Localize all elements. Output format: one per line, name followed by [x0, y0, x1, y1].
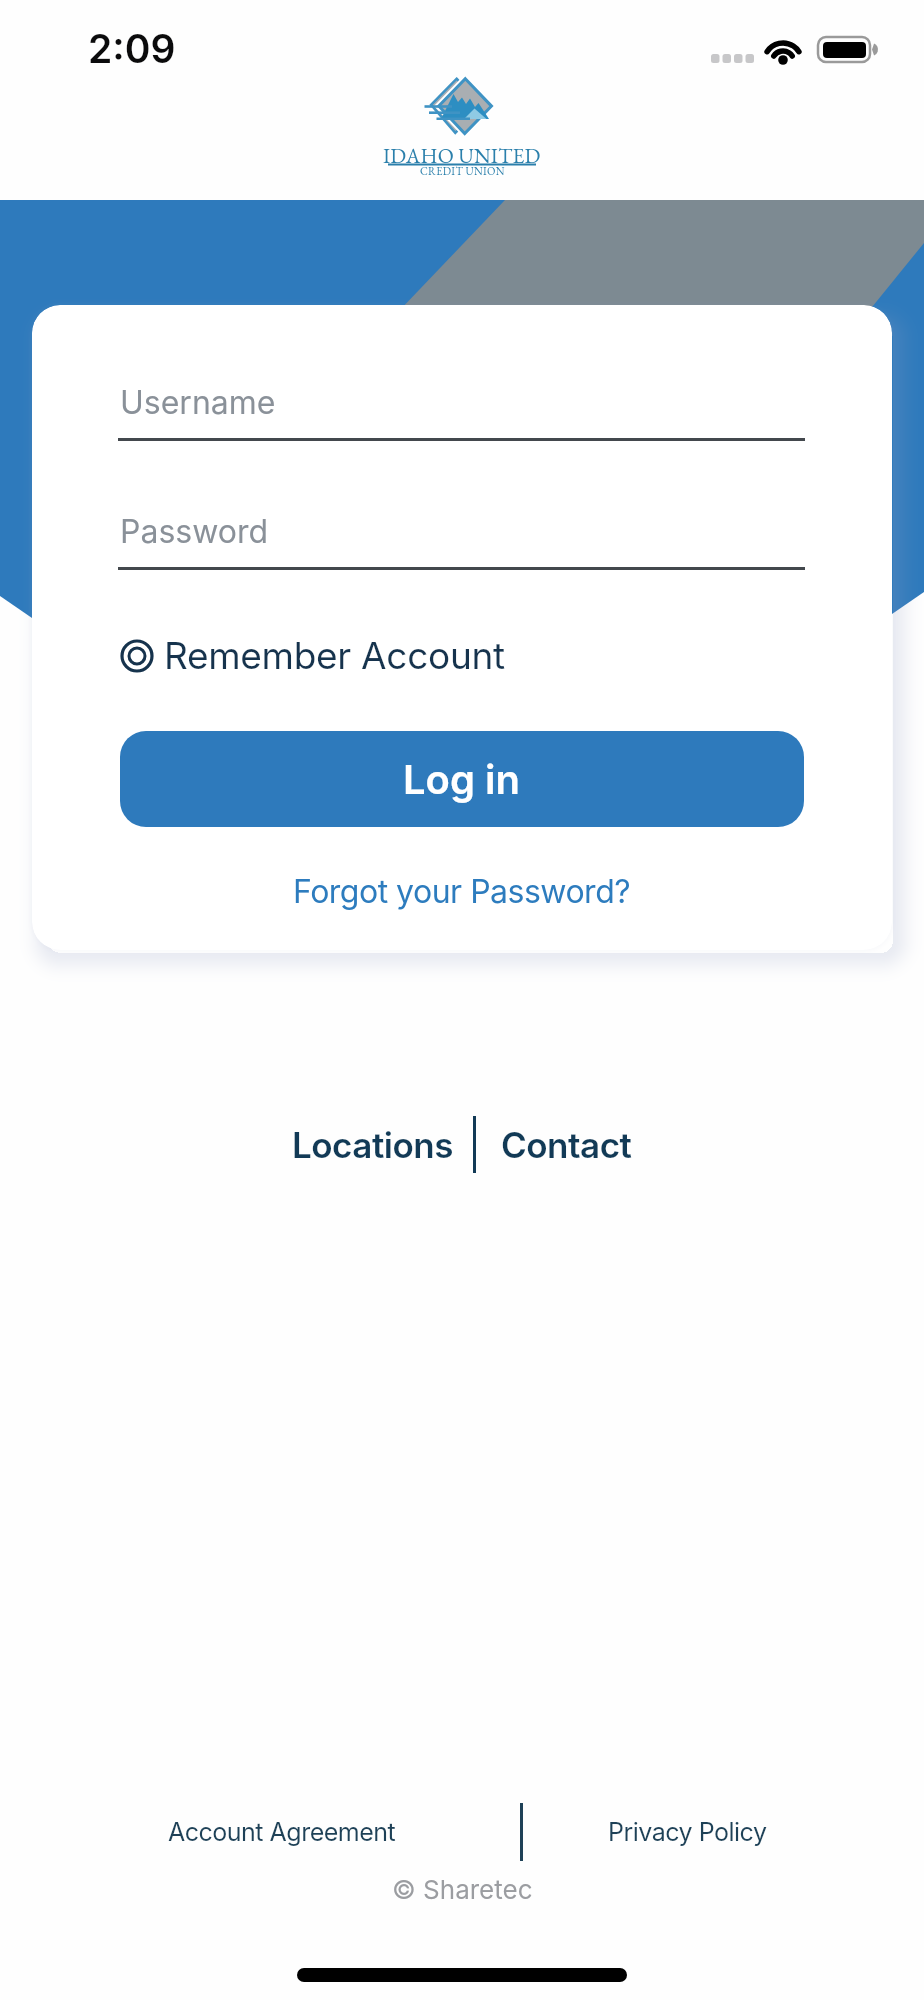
staticText: Account Agreement: [168, 1817, 396, 1847]
staticText: IDAHO UNITED: [383, 142, 541, 169]
button[interactable]: Username: [118, 365, 805, 443]
staticText: 2:09: [88, 25, 176, 72]
staticText: © Sharetec: [392, 1874, 533, 1905]
staticText: Remember Account: [164, 633, 505, 678]
button[interactable]: Contact: [501, 1124, 632, 1166]
button[interactable]: Locations: [292, 1124, 453, 1166]
staticText: Password: [120, 512, 269, 551]
button[interactable]: Privacy Policy: [505, 1809, 869, 1855]
staticText: CREDIT UNION: [420, 164, 505, 178]
staticText: Log in: [403, 755, 521, 803]
button[interactable]: Password: [118, 494, 805, 572]
staticText: Privacy Policy: [608, 1817, 767, 1847]
staticText: Username: [120, 383, 276, 422]
button[interactable]: Remember Account: [121, 633, 505, 678]
button[interactable]: Forgot your Password?: [293, 872, 631, 911]
button[interactable]: Account Agreement: [100, 1809, 464, 1855]
button[interactable]: Log in: [120, 731, 804, 827]
